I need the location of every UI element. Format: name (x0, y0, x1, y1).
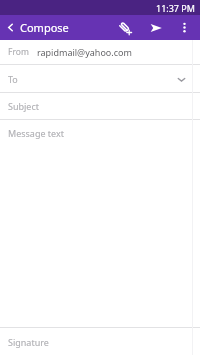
staticText: From (8, 46, 29, 58)
staticText: 11:37 PM (156, 2, 195, 14)
button[interactable]: Signature (0, 328, 200, 355)
button[interactable]: Message text (0, 120, 200, 146)
button[interactable]: Subject (0, 93, 200, 119)
staticText: Message text (8, 127, 65, 139)
button[interactable]: Send (143, 15, 168, 40)
button[interactable]: From (0, 40, 200, 64)
button[interactable]: Compose (0, 15, 75, 40)
button[interactable]: Attach file (112, 15, 137, 40)
button[interactable]: To (0, 65, 200, 92)
button[interactable]: More options (172, 15, 197, 40)
staticText: Compose (20, 20, 69, 35)
staticText: Subject (8, 100, 40, 112)
staticText: To (8, 73, 18, 85)
staticText: rapidmail@yahoo.com (37, 46, 132, 58)
staticText: Signature (8, 336, 49, 348)
button[interactable]: Expand recipients (174, 72, 188, 86)
